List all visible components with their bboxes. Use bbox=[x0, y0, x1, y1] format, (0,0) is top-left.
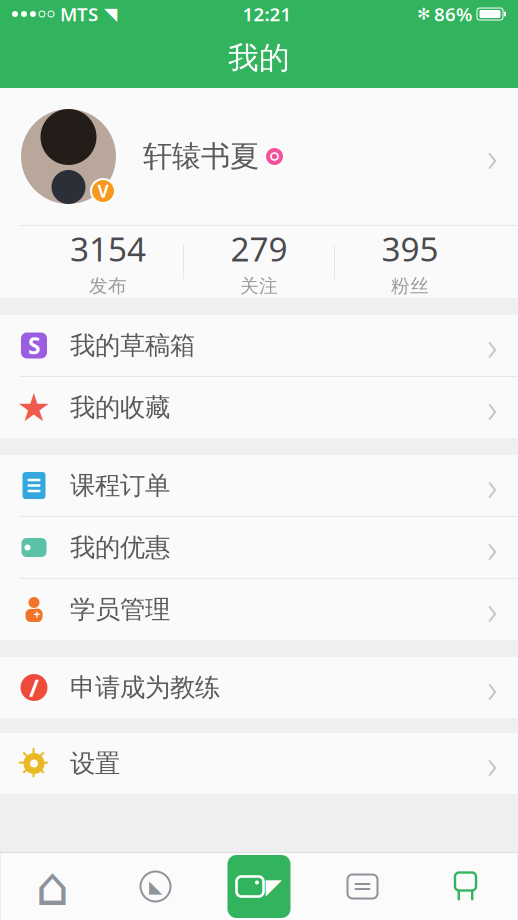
staticText: ✳ bbox=[17, 741, 51, 786]
staticText: › bbox=[487, 737, 498, 790]
staticText: 395 bbox=[381, 226, 438, 271]
staticText: 申请成为教练 bbox=[70, 672, 220, 703]
staticText: + bbox=[33, 606, 40, 622]
button[interactable]: 3154 bbox=[33, 226, 183, 298]
staticText: 课程订单 bbox=[70, 470, 170, 501]
staticText: 粉丝 bbox=[391, 275, 429, 298]
staticText: 轩辕书夏 bbox=[143, 138, 259, 174]
staticText: › bbox=[487, 381, 498, 434]
staticText: 3154 bbox=[70, 226, 146, 271]
staticText: ★ bbox=[16, 386, 51, 429]
staticText: 279 bbox=[230, 226, 287, 271]
button[interactable]: Messages bbox=[311, 853, 414, 920]
staticText: › bbox=[487, 130, 498, 183]
staticText: 我的草稿箱 bbox=[70, 330, 195, 361]
button[interactable]: V bbox=[0, 88, 518, 225]
button[interactable]: ✳ bbox=[0, 733, 518, 794]
staticText: S bbox=[28, 330, 40, 360]
button[interactable]: S bbox=[0, 315, 518, 377]
button[interactable]: 课程订单 bbox=[0, 455, 518, 517]
staticText: › bbox=[487, 661, 498, 714]
staticText: 我的收藏 bbox=[70, 392, 170, 423]
staticText: ◣ bbox=[149, 877, 162, 896]
staticText: MTS bbox=[60, 2, 98, 26]
button[interactable]: Home bbox=[1, 853, 104, 920]
staticText: › bbox=[487, 319, 498, 372]
staticText: ◥ bbox=[104, 4, 117, 24]
staticText: 我的优惠 bbox=[70, 532, 170, 563]
button[interactable]: 279 bbox=[184, 226, 334, 298]
staticText: ⌂ bbox=[35, 856, 69, 917]
staticText: 12:21 bbox=[242, 2, 291, 26]
staticText: 我的 bbox=[228, 39, 290, 77]
staticText: 关注 bbox=[240, 275, 278, 298]
staticText: 86% bbox=[434, 2, 472, 26]
button[interactable]: 我的优惠 bbox=[0, 517, 518, 579]
button[interactable]: Record video bbox=[207, 853, 311, 920]
staticText: › bbox=[487, 521, 498, 574]
staticText: / bbox=[29, 672, 39, 703]
button[interactable]: / bbox=[0, 657, 518, 718]
staticText: 学员管理 bbox=[70, 594, 170, 625]
staticText: › bbox=[487, 459, 498, 512]
staticText: ✻ bbox=[417, 5, 430, 23]
button[interactable]: ★ bbox=[0, 377, 518, 438]
staticText: ◤ bbox=[265, 874, 281, 899]
staticText: 发布 bbox=[89, 275, 127, 298]
staticText: 设置 bbox=[70, 748, 120, 779]
button[interactable]: Discover bbox=[104, 853, 207, 920]
button[interactable]: 395 bbox=[335, 226, 485, 298]
staticText: › bbox=[487, 583, 498, 636]
button[interactable]: Profile bbox=[414, 853, 517, 920]
button[interactable]: + bbox=[0, 579, 518, 640]
staticText: V bbox=[97, 179, 108, 202]
